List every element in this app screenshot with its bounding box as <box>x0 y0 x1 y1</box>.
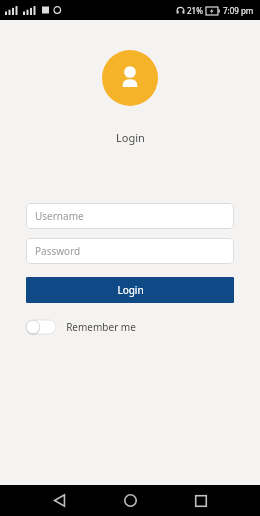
staticText: Login <box>117 283 144 297</box>
button[interactable]: Password <box>26 238 234 264</box>
button[interactable]: Recent apps <box>183 485 219 516</box>
button[interactable]: Home <box>112 485 148 516</box>
button[interactable]: Remember me <box>26 316 136 338</box>
staticText: Username <box>35 209 84 223</box>
button[interactable]: Username <box>26 203 234 229</box>
staticText: Login <box>116 130 145 145</box>
button[interactable]: User avatar <box>102 50 158 106</box>
button[interactable]: Login <box>26 277 234 303</box>
staticText: Remember me <box>66 320 136 334</box>
staticText: Password <box>35 244 81 258</box>
button[interactable]: Back <box>41 485 77 516</box>
staticText: 7:09 pm <box>223 5 254 16</box>
staticText: 21% <box>187 5 203 16</box>
